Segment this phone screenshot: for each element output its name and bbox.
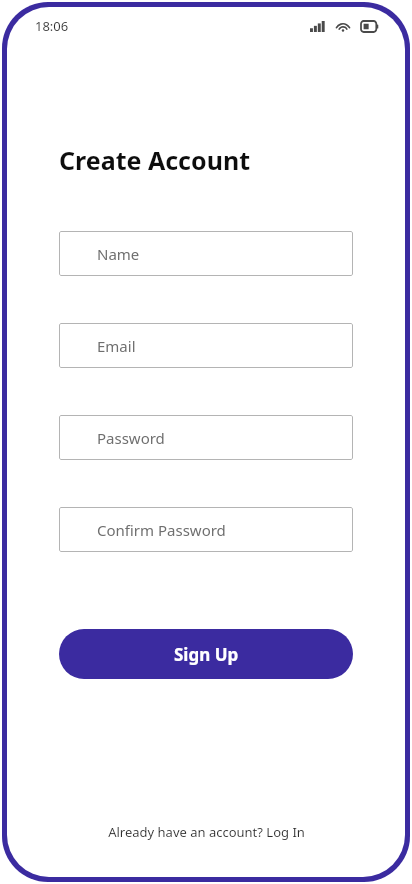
staticText: 18:06 xyxy=(35,17,69,35)
staticText: Confirm Password xyxy=(97,520,226,540)
button[interactable]: Confirm Password xyxy=(59,507,353,552)
other: Wi-Fi xyxy=(335,20,351,32)
staticText: Email xyxy=(97,336,136,356)
staticText: Name xyxy=(97,244,140,264)
button[interactable]: Name xyxy=(59,231,353,276)
staticText: Already have an account? Log In xyxy=(108,823,305,841)
other: Cellular signal xyxy=(310,21,325,32)
button[interactable]: Already have an account? Log In xyxy=(7,818,405,846)
other: Battery xyxy=(361,21,379,32)
button[interactable]: Sign Up xyxy=(59,629,353,679)
button[interactable]: Email xyxy=(59,323,353,368)
staticText: Create Account xyxy=(59,143,250,177)
staticText: Password xyxy=(97,428,165,448)
staticText: Sign Up xyxy=(174,643,239,666)
button[interactable]: Password xyxy=(59,415,353,460)
